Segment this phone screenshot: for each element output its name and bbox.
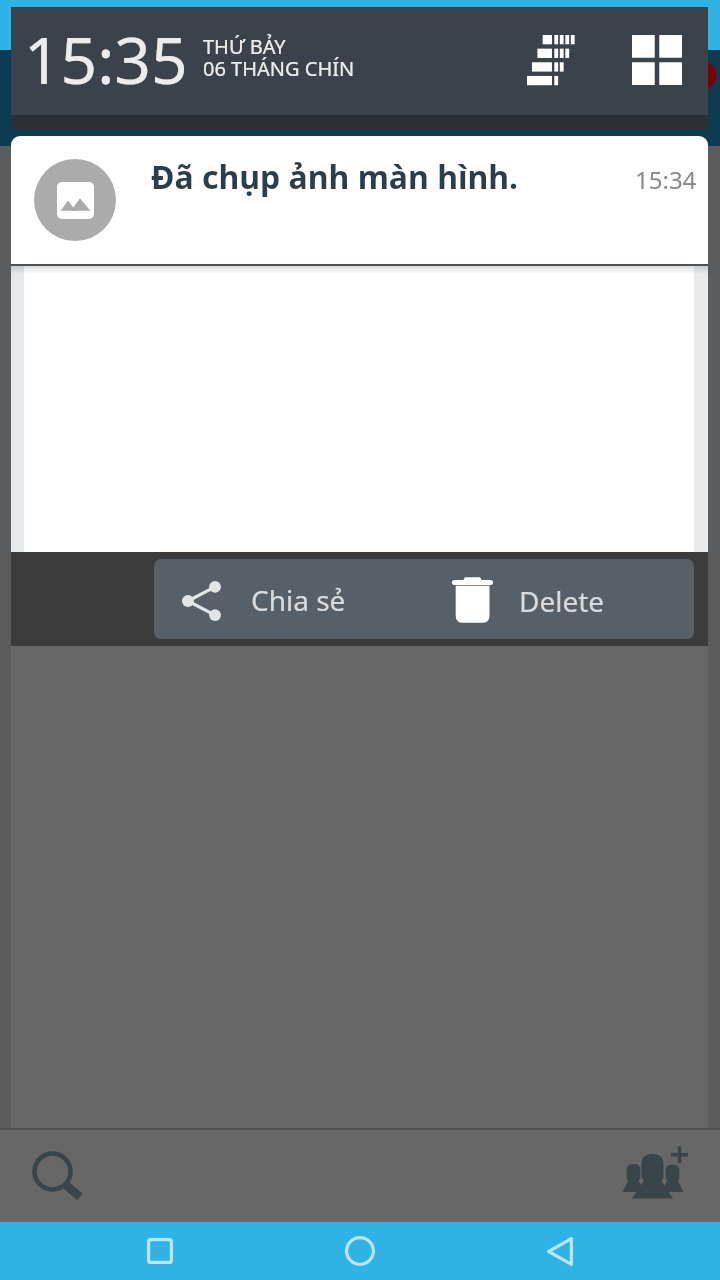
button[interactable]: Delete	[444, 559, 694, 639]
button[interactable]: Search	[12, 1136, 104, 1216]
button[interactable]: Add people	[600, 1132, 708, 1212]
button[interactable]: Back	[512, 1222, 608, 1280]
staticText: 06 THÁNG CHÍN	[203, 55, 355, 82]
button[interactable]: Recents	[112, 1222, 208, 1280]
staticText: 15:35	[24, 16, 188, 103]
button[interactable]: Quick settings	[617, 20, 697, 100]
staticText: Delete	[519, 582, 605, 620]
staticText: 15:34	[635, 163, 697, 196]
button[interactable]: Home	[312, 1222, 408, 1280]
staticText: THỨ BẢY	[203, 33, 286, 60]
button[interactable]: Đã chụp ảnh màn hình.	[11, 136, 708, 264]
button[interactable]: Chia sẻ	[154, 559, 444, 639]
staticText: Đã chụp ảnh màn hình.	[151, 155, 519, 199]
button[interactable]: Data usage	[510, 19, 590, 99]
staticText: Chia sẻ	[251, 581, 346, 619]
